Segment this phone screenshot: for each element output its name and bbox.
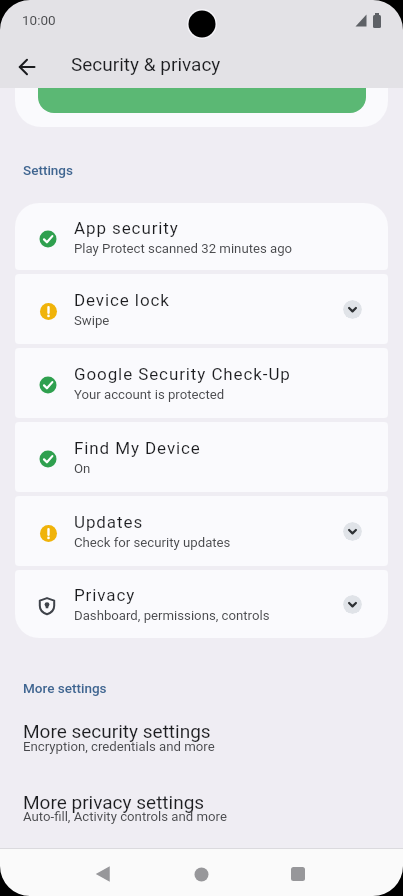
button[interactable] bbox=[343, 300, 362, 319]
staticText: More security settings bbox=[23, 720, 211, 742]
staticText: On bbox=[74, 461, 91, 476]
button[interactable] bbox=[343, 522, 362, 541]
staticText: Updates bbox=[74, 512, 144, 532]
button[interactable]: Updates bbox=[15, 496, 388, 566]
button[interactable] bbox=[278, 854, 318, 894]
button[interactable] bbox=[343, 595, 362, 614]
staticText: Security & privacy bbox=[71, 53, 221, 75]
staticText: Settings bbox=[23, 162, 73, 178]
staticText: Auto-fill, Activity controls and more bbox=[23, 809, 227, 824]
button[interactable] bbox=[38, 88, 366, 113]
staticText: Privacy bbox=[74, 585, 136, 605]
staticText: More settings bbox=[23, 680, 107, 696]
button[interactable] bbox=[7, 45, 47, 85]
staticText: Google Security Check-Up bbox=[74, 364, 291, 384]
staticText: App security bbox=[74, 218, 179, 238]
staticText: More privacy settings bbox=[23, 791, 205, 813]
staticText: Check for security updates bbox=[74, 535, 231, 550]
button[interactable]: Device lock bbox=[15, 274, 388, 344]
button[interactable]: Google Security Check-Up bbox=[15, 348, 388, 418]
button[interactable]: More security settings bbox=[0, 720, 403, 758]
staticText: Encryption, credentials and more bbox=[23, 739, 215, 754]
button[interactable]: Find My Device bbox=[15, 422, 388, 492]
button[interactable]: More privacy settings bbox=[0, 791, 403, 829]
button[interactable]: App security bbox=[15, 203, 388, 270]
staticText: Dashboard, permissions, controls bbox=[74, 608, 270, 623]
button[interactable]: Privacy bbox=[15, 570, 388, 638]
staticText: Swipe bbox=[74, 313, 110, 328]
staticText: Play Protect scanned 32 minutes ago bbox=[74, 241, 293, 256]
button[interactable] bbox=[181, 854, 221, 894]
button[interactable] bbox=[83, 854, 123, 894]
staticText: 10:00 bbox=[22, 12, 56, 28]
staticText: Your account is protected bbox=[74, 387, 225, 402]
staticText: Device lock bbox=[74, 290, 170, 310]
staticText: Find My Device bbox=[74, 438, 201, 458]
